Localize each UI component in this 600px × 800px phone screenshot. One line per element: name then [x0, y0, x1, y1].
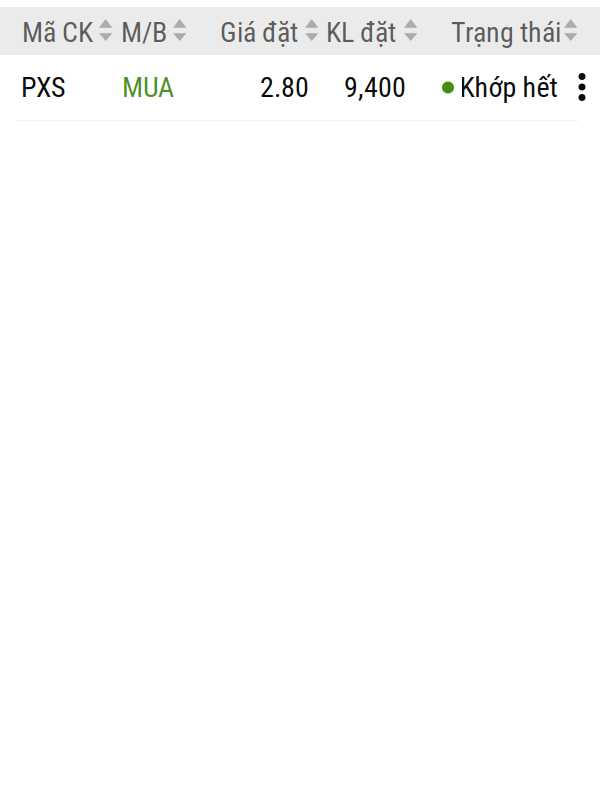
- staticText: MUA: [122, 71, 174, 104]
- staticText: 9,400: [344, 71, 406, 104]
- button[interactable]: Giá đặt: [212, 7, 322, 55]
- staticText: Trạng thái: [451, 16, 561, 49]
- staticText: Mã CK: [22, 16, 93, 49]
- button[interactable]: Trạng thái: [426, 7, 600, 55]
- staticText: Khớp hết: [459, 71, 557, 104]
- staticText: 2.80: [260, 71, 309, 104]
- staticText: KL đặt: [326, 16, 396, 49]
- staticText: PXS: [21, 71, 66, 104]
- button[interactable]: PXS: [0, 55, 600, 120]
- staticText: M/B: [121, 16, 167, 49]
- button[interactable]: KL đặt: [322, 7, 426, 55]
- button[interactable]: More options: [560, 59, 600, 115]
- button[interactable]: M/B: [114, 7, 212, 55]
- button[interactable]: Mã CK: [12, 7, 114, 55]
- staticText: Giá đặt: [220, 16, 298, 49]
